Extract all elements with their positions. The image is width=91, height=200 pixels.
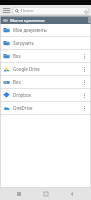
button[interactable]: More options <box>80 102 88 114</box>
button[interactable]: Menu <box>0 5 12 16</box>
staticText: Box <box>13 53 80 59</box>
button[interactable]: Box <box>0 76 91 88</box>
staticText: Мои документы <box>13 27 80 33</box>
button[interactable]: OneDrive <box>0 102 91 114</box>
button[interactable]: Back <box>64 188 80 200</box>
button[interactable]: Recent apps <box>11 188 27 200</box>
button[interactable]: Google Drive <box>0 63 91 75</box>
staticText: Box <box>13 79 80 85</box>
button[interactable]: Dropbox <box>0 89 91 101</box>
staticText: Dropbox <box>13 92 80 98</box>
button[interactable]: Поиск <box>12 7 89 15</box>
button[interactable]: More options <box>80 63 88 75</box>
staticText: Места хранения <box>10 17 45 23</box>
button[interactable]: Box <box>0 50 91 62</box>
button[interactable]: More options <box>80 50 88 62</box>
staticText: Загрузить <box>13 40 80 46</box>
staticText: Google Drive <box>13 66 80 72</box>
staticText: Поиск <box>21 8 34 14</box>
button[interactable]: Home <box>38 188 54 200</box>
button[interactable]: Места хранения <box>0 16 91 24</box>
button[interactable]: Clear search <box>82 8 89 15</box>
button[interactable]: Загрузить <box>0 37 91 49</box>
staticText: OneDrive <box>13 105 80 111</box>
button[interactable]: More options <box>80 76 88 88</box>
button[interactable]: More options <box>80 89 88 101</box>
button[interactable]: Мои документы <box>0 24 91 36</box>
